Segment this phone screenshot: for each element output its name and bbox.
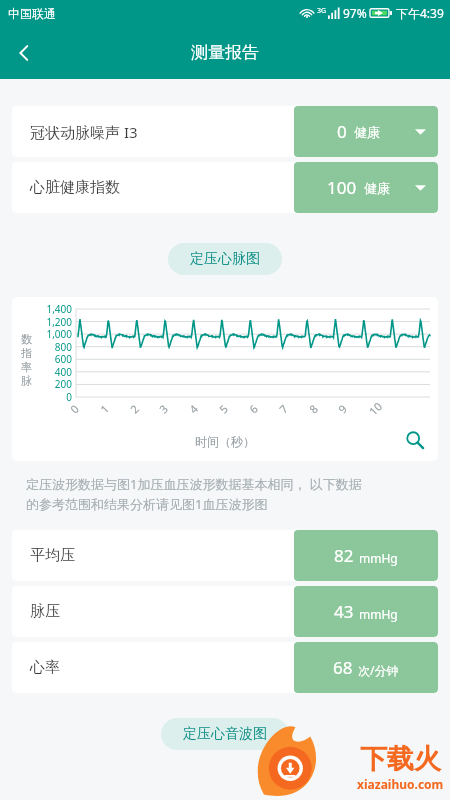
staticText: 7 — [276, 401, 291, 416]
staticText: 600 — [34, 352, 72, 366]
staticText: 脉 — [21, 374, 32, 388]
staticText: 43 — [334, 600, 354, 623]
staticText: 3 — [156, 401, 171, 416]
button[interactable]: 心率 — [12, 642, 438, 693]
staticText: 定压波形数据与图1加压血压波形数据基本相同， 以下数据 的参考范围和结果分析请见… — [26, 475, 362, 513]
staticText: 0 — [34, 390, 72, 404]
staticText: 4 — [186, 401, 201, 416]
staticText: 冠状动脉噪声 I3 — [30, 122, 294, 142]
staticText: 6 — [246, 401, 261, 416]
button[interactable]: Zoom chart — [400, 425, 430, 455]
staticText: 2 — [127, 401, 142, 416]
staticText: 心率 — [30, 658, 294, 677]
staticText: 测量报告 — [191, 42, 259, 63]
button[interactable]: 平均压 — [12, 530, 438, 581]
staticText: mmHg — [359, 606, 398, 622]
staticText: 400 — [34, 365, 72, 379]
staticText: 下载火 — [360, 742, 441, 776]
staticText: 1,000 — [34, 327, 72, 341]
staticText: 脉压 — [30, 602, 294, 621]
staticText: 68 — [333, 656, 353, 679]
staticText: 次/分钟 — [358, 662, 399, 678]
button[interactable]: 脉压 — [12, 586, 438, 637]
staticText: 97% — [343, 5, 367, 21]
staticText: 5 — [216, 401, 231, 416]
staticText: 率 — [21, 360, 32, 374]
staticText: 0 — [337, 120, 347, 143]
staticText: 数 — [21, 332, 32, 346]
staticText: 10 — [366, 399, 385, 418]
staticText: 时间（秒） — [195, 434, 255, 449]
staticText: 1,400 — [34, 302, 72, 316]
staticText: 心脏健康指数 — [30, 178, 294, 197]
staticText: 9 — [335, 401, 350, 416]
staticText: 中国联通 — [8, 6, 56, 21]
button[interactable]: 定压心音波图 — [161, 718, 289, 750]
staticText: 健康 — [354, 124, 380, 140]
staticText: 下午4:39 — [396, 5, 444, 21]
staticText: 健康 — [364, 180, 390, 196]
button[interactable]: 冠状动脉噪声 I3 — [12, 106, 438, 157]
staticText: 定压心音波图 — [183, 725, 267, 743]
staticText: 100 — [327, 176, 357, 199]
staticText: xiazaihuo.com — [357, 776, 444, 792]
staticText: 3G — [317, 6, 327, 16]
staticText: 200 — [34, 377, 72, 391]
staticText: mmHg — [359, 550, 398, 566]
staticText: 0 — [67, 401, 82, 416]
staticText: 指 — [21, 346, 32, 360]
staticText: 1 — [97, 401, 112, 416]
button[interactable]: Back — [0, 29, 48, 77]
staticText: 定压心脉图 — [190, 250, 260, 268]
staticText: 1,200 — [34, 315, 72, 329]
staticText: 8 — [306, 401, 321, 416]
staticText: 82 — [334, 544, 354, 567]
button[interactable]: 心脏健康指数 — [12, 162, 438, 213]
button[interactable]: 定压心脉图 — [168, 243, 282, 275]
staticText: 800 — [34, 340, 72, 354]
staticText: 平均压 — [30, 546, 294, 565]
